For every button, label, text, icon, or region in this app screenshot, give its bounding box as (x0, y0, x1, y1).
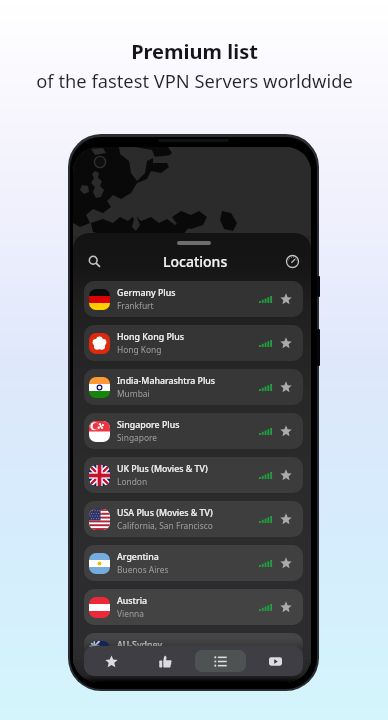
staticText: Premium list (131, 38, 258, 65)
button[interactable]: Austria (84, 589, 303, 625)
staticText: California, San Francisco (117, 520, 213, 531)
staticText: London (117, 476, 148, 487)
staticText: Austria (117, 595, 148, 607)
button[interactable]: Recommended (140, 650, 191, 672)
staticText: India-Maharashtra Plus (117, 375, 216, 387)
button[interactable]: Search (83, 250, 105, 272)
button[interactable]: Argentina (84, 545, 303, 581)
button[interactable]: Favorites (86, 650, 136, 672)
staticText: Frankfurt (117, 300, 154, 311)
staticText: Germany Plus (117, 287, 176, 299)
button[interactable]: Speed test (281, 250, 303, 272)
staticText: Hong Kong (117, 344, 162, 355)
staticText: Vienna (117, 608, 145, 619)
staticText: USA Plus (Movies & TV) (117, 507, 213, 519)
staticText: Buenos Aires (117, 564, 169, 575)
staticText: Locations (163, 252, 228, 271)
staticText: Singapore Plus (117, 419, 180, 431)
staticText: Argentina (117, 551, 159, 563)
button[interactable]: AU-Sydney (84, 633, 303, 669)
button[interactable]: Streaming (250, 650, 301, 672)
staticText: Singapore (117, 432, 158, 443)
staticText: of the fastest VPN Servers worldwide (36, 68, 353, 93)
button[interactable]: UK Plus (Movies & TV) (84, 457, 303, 493)
button[interactable]: All servers (195, 650, 246, 672)
button[interactable]: India-Maharashtra Plus (84, 369, 303, 405)
button[interactable]: Germany Plus (84, 281, 303, 317)
staticText: Mumbai (117, 388, 150, 399)
staticText: Hong Kong Plus (117, 331, 184, 343)
button[interactable]: Singapore Plus (84, 413, 303, 449)
button[interactable]: USA Plus (Movies & TV) (84, 501, 303, 537)
staticText: AU-Sydney (117, 639, 163, 651)
button[interactable]: Hong Kong Plus (84, 325, 303, 361)
staticText: UK Plus (Movies & TV) (117, 463, 208, 475)
